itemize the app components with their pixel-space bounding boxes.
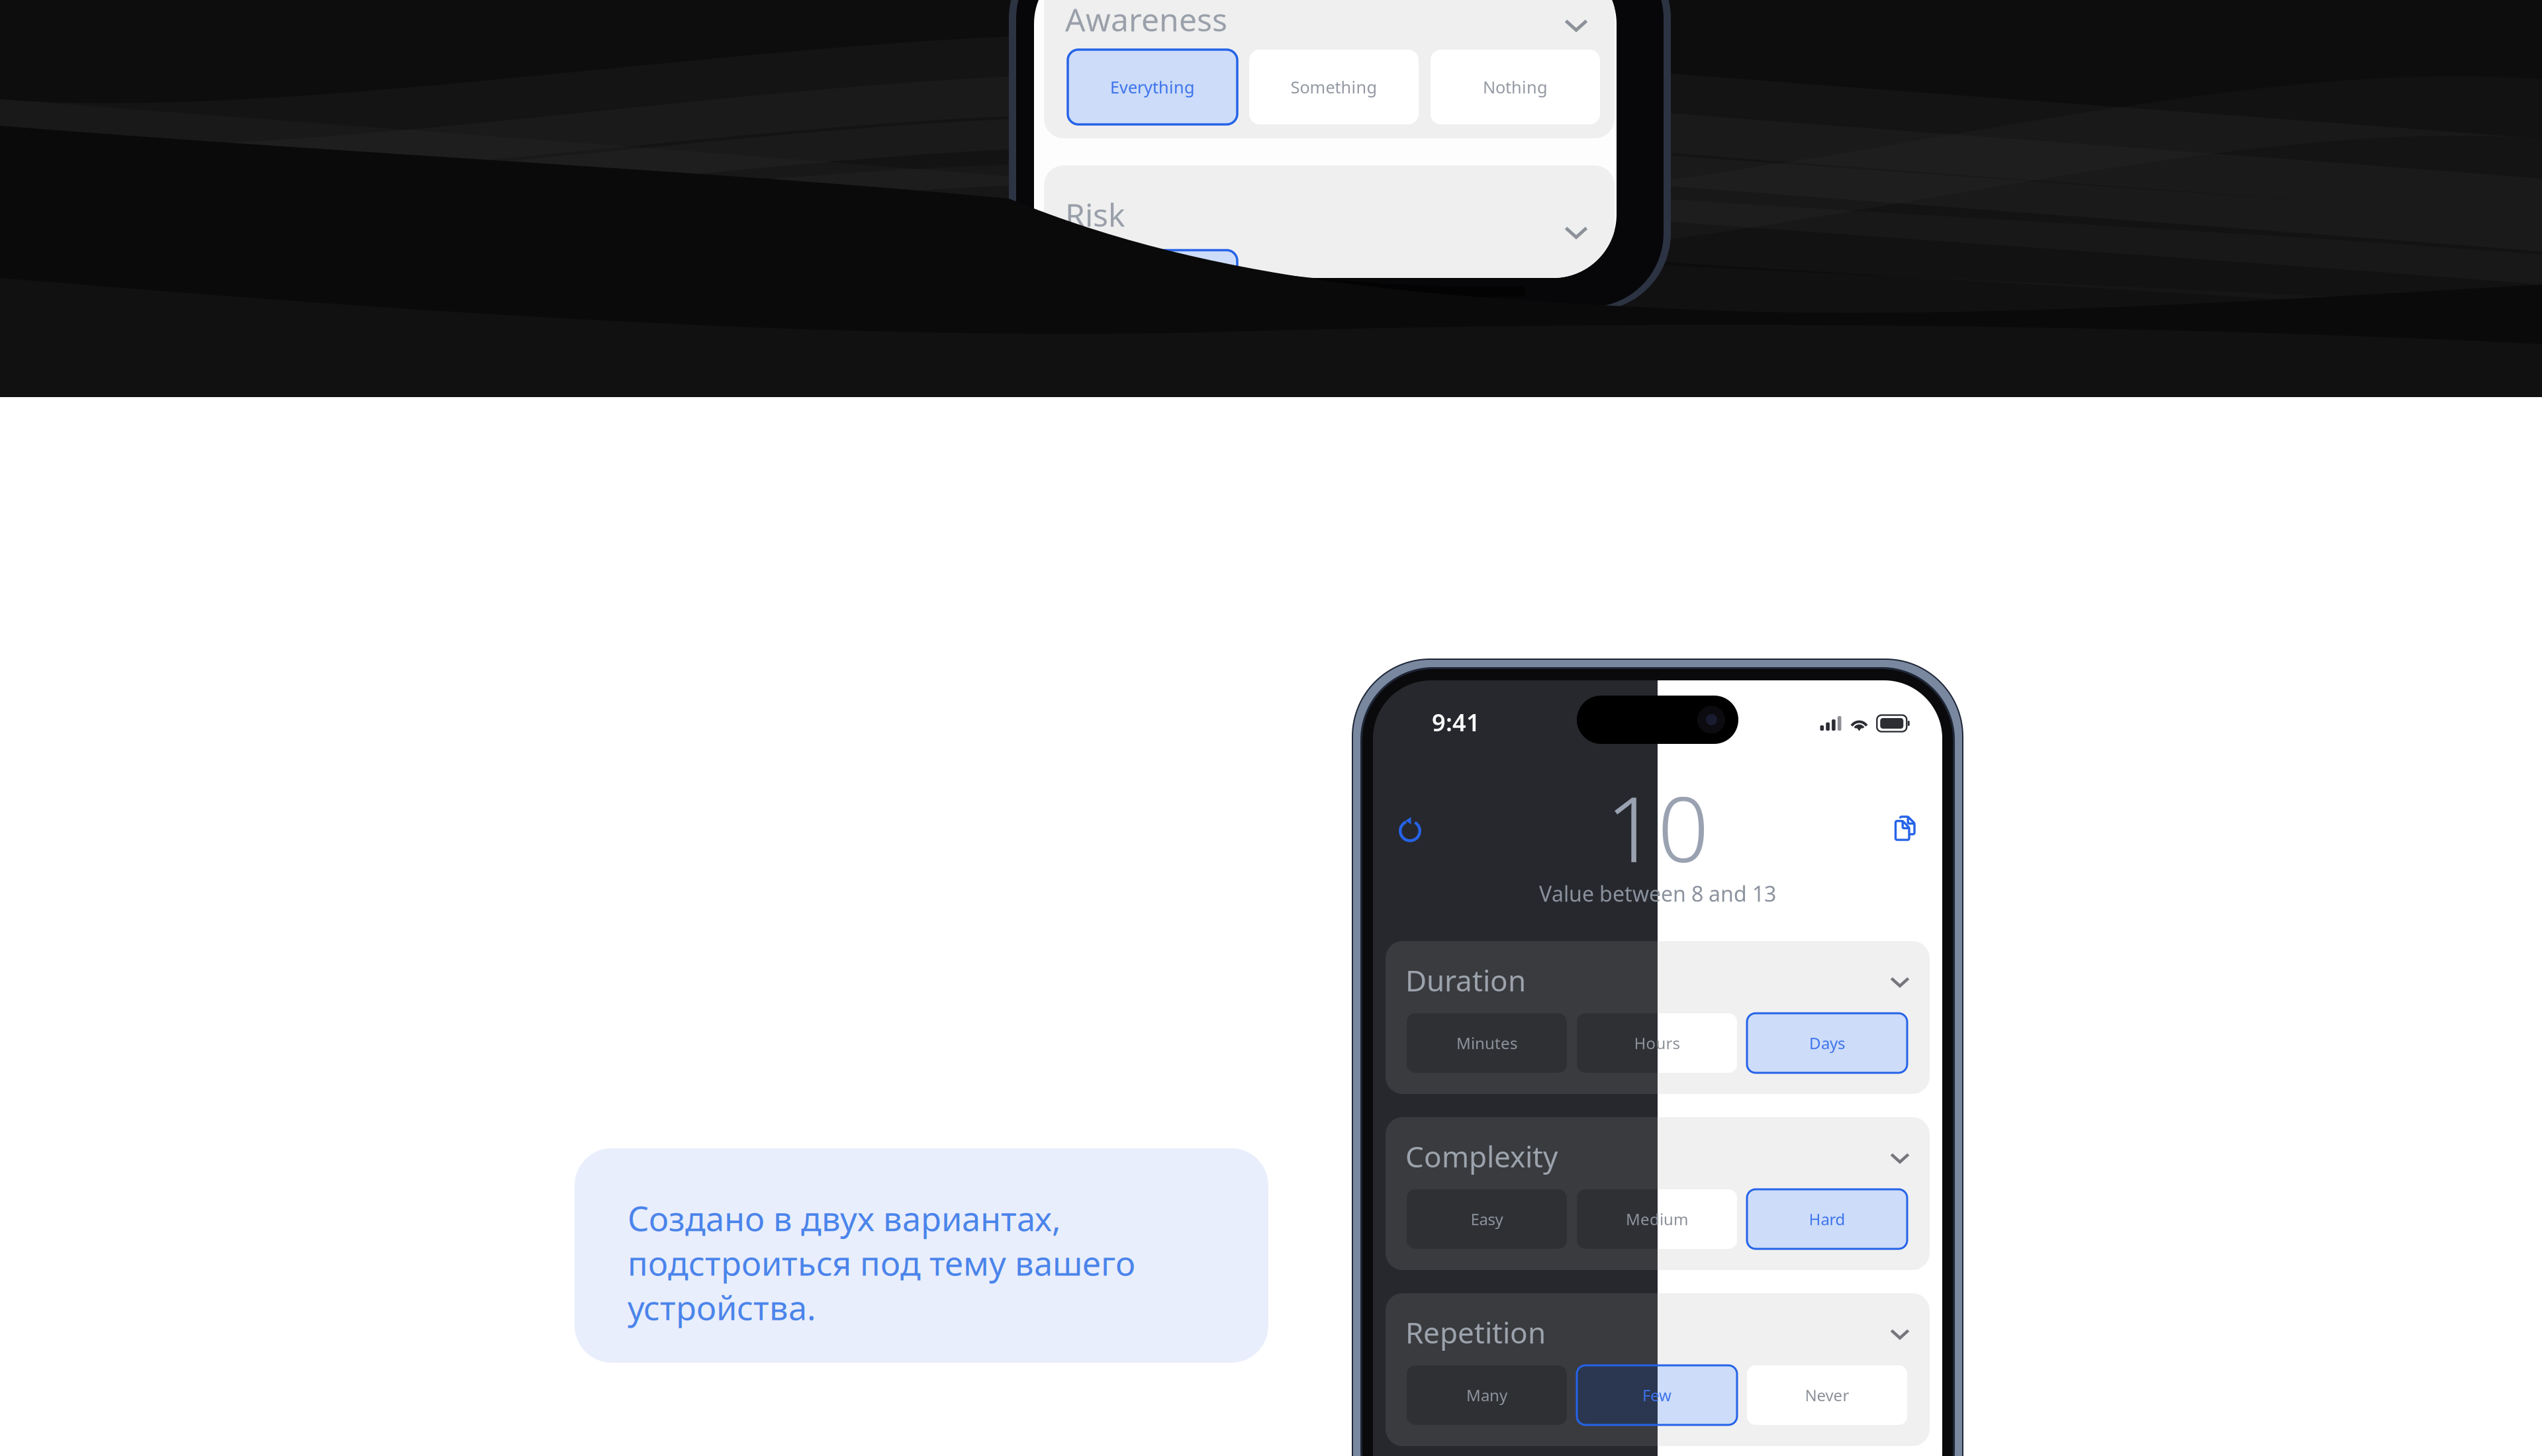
- button[interactable]: Many: [1407, 1365, 1567, 1425]
- button[interactable]: Something: [1249, 50, 1419, 124]
- staticText: Medium: [1626, 1209, 1688, 1230]
- staticText: Complexity: [1405, 1137, 1558, 1176]
- button[interactable]: Collapse Complexity: [1881, 1140, 1918, 1177]
- button[interactable]: Collapse Complexity: [1881, 1140, 1918, 1177]
- staticText: Hard: [1809, 1209, 1845, 1230]
- button[interactable]: Easy: [1407, 1189, 1567, 1249]
- staticText: Days: [1809, 1033, 1845, 1054]
- staticText: Awareness: [1065, 0, 1227, 40]
- staticText: Everything: [1110, 76, 1195, 98]
- button[interactable]: Collapse Repetition: [1881, 1316, 1918, 1353]
- button[interactable]: Copy: [1893, 815, 1916, 842]
- staticText: Duration: [1405, 961, 1526, 999]
- staticText: Something: [1291, 76, 1377, 98]
- button[interactable]: Days: [1747, 1013, 1907, 1073]
- staticText: 10: [1606, 768, 1709, 887]
- staticText: Easy: [1471, 1209, 1503, 1230]
- staticText: Hard: [1809, 1209, 1845, 1230]
- staticText: Repetition: [1405, 1313, 1546, 1352]
- button[interactable]: Days: [1747, 1013, 1907, 1073]
- staticText: Complexity: [1405, 1137, 1558, 1176]
- staticText: Minutes: [1456, 1033, 1517, 1054]
- button[interactable]: Reset: [1397, 815, 1423, 841]
- button[interactable]: Never: [1747, 1365, 1907, 1425]
- button[interactable]: Reset: [1397, 815, 1423, 841]
- staticText: Value between 8 and 13: [1539, 879, 1776, 908]
- staticText: Never: [1805, 1385, 1849, 1406]
- button[interactable]: Collapse Duration: [1881, 964, 1918, 1001]
- staticText: Risk: [1065, 193, 1125, 235]
- button[interactable]: Medium: [1577, 1189, 1737, 1249]
- button[interactable]: Many: [1407, 1365, 1567, 1425]
- staticText: Never: [1805, 1385, 1849, 1406]
- staticText: Repetition: [1405, 1313, 1546, 1352]
- button[interactable]: Easy: [1407, 1189, 1567, 1249]
- button[interactable]: Few: [1577, 1365, 1737, 1425]
- button[interactable]: Minutes: [1407, 1013, 1567, 1073]
- staticText: Medium: [1626, 1209, 1688, 1230]
- staticText: Days: [1809, 1033, 1845, 1054]
- staticText: Few: [1642, 1385, 1671, 1406]
- staticText: Many: [1466, 1385, 1507, 1406]
- staticText: Few: [1642, 1385, 1671, 1406]
- staticText: Minutes: [1456, 1033, 1517, 1054]
- staticText: Nothing: [1483, 76, 1548, 98]
- staticText: Создано в двух вариантах, подстроиться п…: [628, 1196, 1135, 1330]
- staticText: Value between 8 and 13: [1539, 879, 1776, 908]
- staticText: Hours: [1634, 1033, 1680, 1054]
- button[interactable]: Collapse Duration: [1881, 964, 1918, 1001]
- button[interactable]: Collapse Repetition: [1881, 1316, 1918, 1353]
- button[interactable]: Nothing: [1431, 50, 1600, 124]
- staticText: Duration: [1405, 961, 1526, 999]
- staticText: Many: [1466, 1385, 1507, 1406]
- button[interactable]: Hard: [1747, 1189, 1907, 1249]
- staticText: 9:41: [1432, 706, 1480, 738]
- button[interactable]: Few: [1577, 1365, 1737, 1425]
- button[interactable]: Hours: [1577, 1013, 1737, 1073]
- button[interactable]: Copy: [1893, 815, 1916, 842]
- button[interactable]: Hard: [1747, 1189, 1907, 1249]
- button[interactable]: Minutes: [1407, 1013, 1567, 1073]
- button[interactable]: Medium: [1577, 1189, 1737, 1249]
- button[interactable]: Everything: [1068, 50, 1237, 124]
- button[interactable]: Never: [1747, 1365, 1907, 1425]
- staticText: 10: [1606, 768, 1709, 887]
- staticText: Hours: [1634, 1033, 1680, 1054]
- staticText: 9:41: [1432, 706, 1480, 738]
- button[interactable]: Hours: [1577, 1013, 1737, 1073]
- staticText: Easy: [1471, 1209, 1503, 1230]
